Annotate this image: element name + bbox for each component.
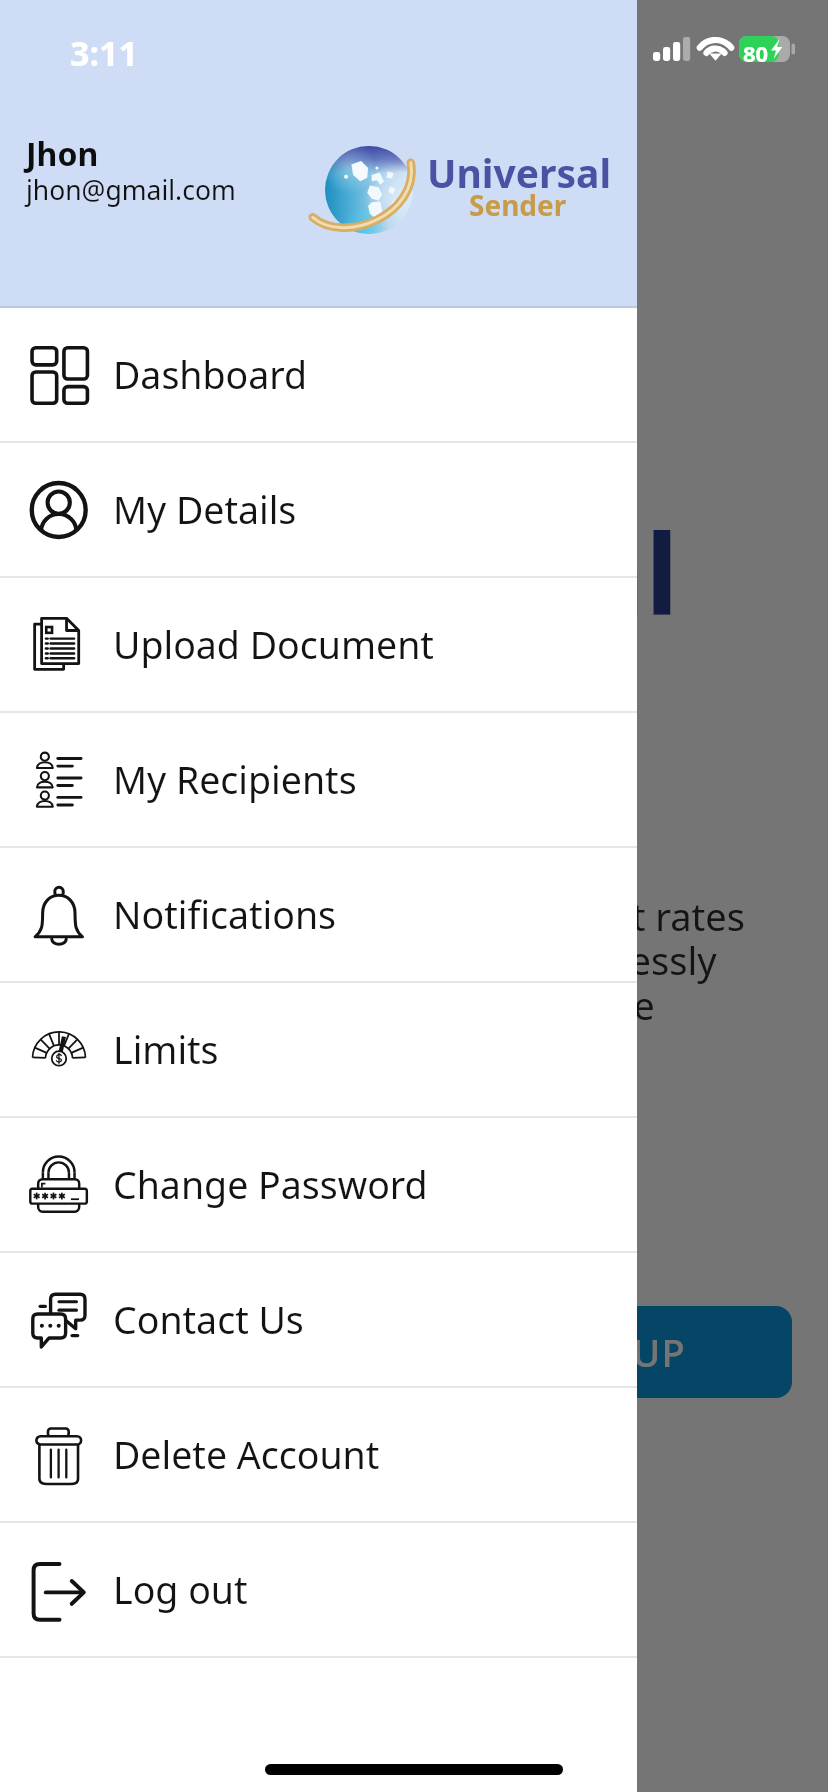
- staticText: 80: [743, 38, 769, 64]
- staticText: Sender: [469, 186, 567, 224]
- button[interactable]: Notifications: [0, 848, 637, 983]
- staticText: Compare best rates send effortlessly wit…: [170, 890, 828, 1031]
- button[interactable]: Change Password: [0, 1118, 637, 1253]
- button[interactable]: My Recipients: [0, 713, 637, 848]
- button[interactable]: Dashboard: [0, 308, 637, 443]
- staticText: Delete Account: [113, 1429, 380, 1480]
- staticText: Upload Document: [113, 619, 434, 670]
- staticText: 3:11: [70, 30, 138, 76]
- staticText: Jhon: [26, 132, 99, 176]
- staticText: Limits: [113, 1024, 219, 1075]
- staticText: Universal: [427, 146, 612, 199]
- staticText: Notifications: [113, 889, 337, 940]
- staticText: SIGN UP: [526, 1326, 686, 1378]
- staticText: My Details: [113, 484, 297, 535]
- button[interactable]: SIGN UP: [420, 1306, 792, 1398]
- button[interactable]: Contact Us: [0, 1253, 637, 1388]
- button[interactable]: Log out: [0, 1523, 637, 1658]
- button[interactable]: Delete Account: [0, 1388, 637, 1523]
- staticText: My Recipients: [113, 754, 357, 805]
- staticText: Dashboard: [113, 349, 308, 400]
- staticText: Sender: [258, 585, 550, 699]
- staticText: jhon@gmail.com: [26, 172, 236, 208]
- staticText: Universal: [150, 495, 679, 648]
- button[interactable]: Upload Document: [0, 578, 637, 713]
- button[interactable]: My Details: [0, 443, 637, 578]
- staticText: Contact Us: [113, 1294, 304, 1345]
- staticText: Change Password: [113, 1159, 428, 1210]
- staticText: Log out: [113, 1564, 248, 1615]
- button[interactable]: Limits: [0, 983, 637, 1118]
